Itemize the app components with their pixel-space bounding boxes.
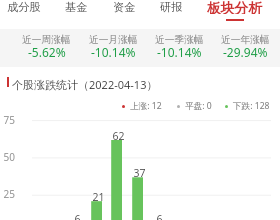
staticText: 近一季涨幅 [155,34,204,46]
staticText: 6 [156,212,163,220]
staticText: 个股涨跌统计（2022-04-13） [12,77,158,92]
staticText: 研报 [160,0,183,14]
button[interactable]: 近一年涨幅 [212,29,278,67]
staticText: 62 [112,129,125,143]
staticText: -29.94% [223,44,268,60]
staticText: 基金 [65,0,88,14]
staticText: 50 [3,150,15,164]
staticText: 成分股 [7,0,41,14]
staticText: 近一月涨幅 [89,34,138,46]
staticText: 75 [3,113,15,127]
staticText: 25 [3,187,15,201]
staticText: 37 [133,166,146,180]
button[interactable]: 研报 [160,0,183,25]
staticText: -10.14% [157,44,202,60]
staticText: 21 [92,190,105,204]
button[interactable]: 近一周涨幅 [13,29,80,67]
button[interactable]: 成分股 [7,0,41,25]
staticText: -5.62% [28,44,66,60]
button[interactable]: 基金 [65,0,88,25]
staticText: 板块分析 [207,0,263,14]
staticText: -10.14% [91,44,136,60]
staticText: 资金 [113,0,136,14]
staticText: 上涨: 12 [130,100,162,112]
staticText: 近一年涨幅 [221,34,270,46]
staticText: 平盘: 0 [185,100,212,112]
button[interactable]: 近一季涨幅 [146,29,212,67]
staticText: 近一周涨幅 [22,34,71,46]
staticText: 6 [74,212,81,220]
button[interactable]: 资金 [113,0,136,25]
button[interactable]: 近一月涨幅 [80,29,146,67]
button[interactable]: 板块分析 [207,0,263,25]
staticText: 下跌: 128 [233,100,270,112]
